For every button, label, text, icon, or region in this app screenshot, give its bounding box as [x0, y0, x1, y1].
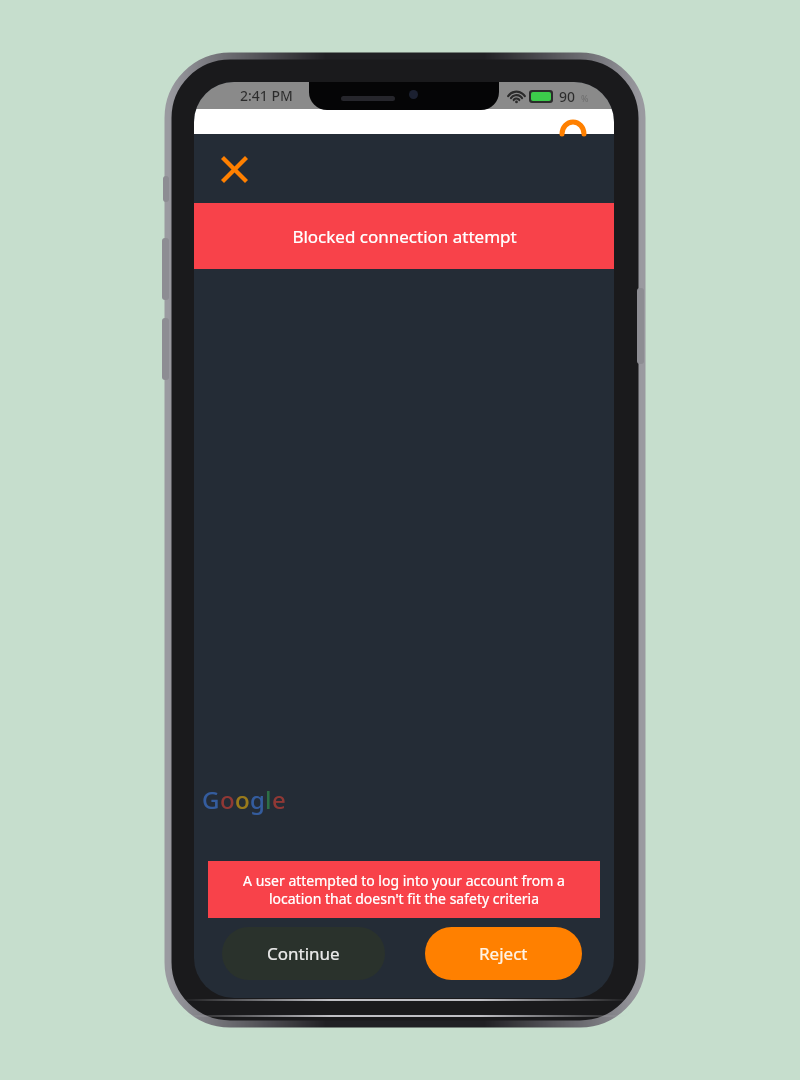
staticText: 2:41 PM [240, 86, 293, 105]
button[interactable]: Continue [222, 927, 385, 980]
staticText: G [202, 783, 220, 816]
staticText: Continue [267, 942, 340, 965]
button[interactable]: Reject [425, 927, 582, 980]
staticText: A user attempted to log into your accoun… [216, 871, 592, 908]
staticText: e [272, 783, 286, 816]
staticText: o [220, 783, 235, 816]
button[interactable]: A user attempted to log into your accoun… [208, 861, 600, 918]
button[interactable]: Blocked connection attempt [194, 203, 614, 269]
button[interactable]: Close [212, 147, 256, 191]
staticText: 90 [559, 87, 576, 106]
staticText: Blocked connection attempt [292, 225, 517, 248]
staticText: Reject [479, 942, 528, 965]
staticText: o [235, 783, 250, 816]
staticText: % [581, 92, 589, 104]
staticText: l [265, 783, 272, 816]
staticText: g [250, 783, 265, 816]
